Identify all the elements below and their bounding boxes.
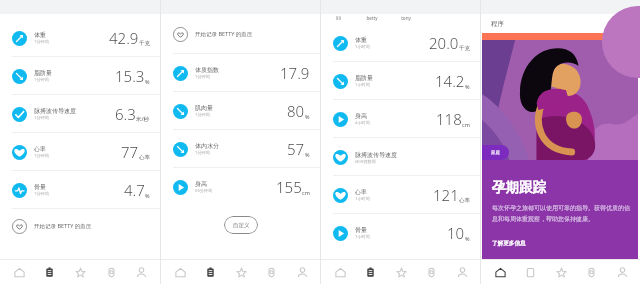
staticText: 心率 <box>34 145 46 153</box>
staticText: 还没有数据 <box>355 159 376 164</box>
staticText: 体内水分 <box>195 142 219 150</box>
button[interactable]: Profile <box>129 260 153 284</box>
staticText: 孕期跟踪 <box>492 179 546 196</box>
button[interactable]: 自定义 <box>224 216 258 234</box>
button[interactable]: Home <box>7 260 31 284</box>
button[interactable]: 骨量 <box>0 171 160 209</box>
staticText: 10 <box>447 223 465 243</box>
button[interactable]: 身高 <box>321 100 480 138</box>
staticText: 57 <box>287 139 305 159</box>
staticText: 脉搏波传导速度 <box>355 151 397 159</box>
button[interactable]: Home <box>168 260 192 284</box>
button[interactable]: betty <box>355 14 389 21</box>
staticText: cm <box>302 189 310 196</box>
staticText: % <box>465 83 470 90</box>
button[interactable]: Favorites <box>549 260 573 284</box>
staticText: 17.9 <box>280 63 310 83</box>
button[interactable]: 心率 <box>0 133 160 171</box>
button[interactable]: Devices <box>259 260 283 284</box>
staticText: 骨量 <box>34 183 46 191</box>
button[interactable]: 体内水分 <box>161 130 320 168</box>
staticText: 体重 <box>34 31 46 39</box>
staticText: 77 <box>121 142 139 162</box>
button[interactable]: Devices <box>579 260 603 284</box>
staticText: 1分钟前 <box>195 150 210 156</box>
staticText: 自定义 <box>233 222 250 229</box>
button[interactable]: 脉搏波传导速度 <box>321 138 480 176</box>
staticText: 1分钟前 <box>34 153 49 159</box>
staticText: 开始记录 BETTY 的血压 <box>34 222 92 230</box>
staticText: % <box>145 78 150 85</box>
staticText: 15.3 <box>115 66 145 86</box>
staticText: 身高 <box>355 112 367 120</box>
staticText: 55分钟前 <box>195 188 213 194</box>
button[interactable]: 体重 <box>321 24 480 62</box>
button[interactable]: 肌肉量 <box>161 92 320 130</box>
button[interactable]: 家庭 <box>482 145 509 160</box>
button[interactable]: Records <box>358 260 382 284</box>
button[interactable]: Favorites <box>229 260 253 284</box>
staticText: 脂肪量 <box>355 74 373 82</box>
staticText: 程序 <box>491 20 504 28</box>
button[interactable]: Records <box>518 260 542 284</box>
staticText: 1小时前 <box>355 234 370 240</box>
staticText: 155 <box>276 177 302 197</box>
button[interactable]: 家庭 <box>482 33 638 259</box>
staticText: 千克 <box>139 40 150 47</box>
button[interactable]: tony <box>389 14 423 21</box>
staticText: 开始记录 BETTY 的血压 <box>195 30 253 38</box>
button[interactable]: 身高 <box>161 168 320 206</box>
staticText: 千克 <box>459 45 470 52</box>
button[interactable]: Favorites <box>389 260 413 284</box>
button[interactable]: 体质指数 <box>161 54 320 92</box>
button[interactable]: 开始记录 BETTY 的血压 <box>161 14 320 54</box>
staticText: 20.0 <box>429 33 459 53</box>
button[interactable]: 了解更多信息 <box>492 240 526 247</box>
staticText: % <box>465 235 470 242</box>
button[interactable]: Home <box>328 260 352 284</box>
staticText: 1分钟前 <box>34 191 49 197</box>
button[interactable]: 开始记录 BETTY 的血压 <box>0 209 160 243</box>
button[interactable]: Records <box>198 260 222 284</box>
staticText: % <box>305 151 310 158</box>
staticText: 米/秒 <box>136 115 150 123</box>
staticText: 42.9 <box>109 28 139 48</box>
button[interactable]: 体重 <box>0 19 160 57</box>
staticText: % <box>305 113 310 120</box>
staticText: 1分钟前 <box>34 39 49 45</box>
button[interactable]: 脉搏波传导速度 <box>0 95 160 133</box>
button[interactable]: 脂肪量 <box>0 57 160 95</box>
staticText: 4小时前 <box>355 120 370 126</box>
staticText: 骨量 <box>355 226 367 234</box>
button[interactable]: Devices <box>419 260 443 284</box>
button[interactable]: Devices <box>99 260 123 284</box>
button[interactable]: Profile <box>290 260 314 284</box>
staticText: 80 <box>287 101 305 121</box>
staticText: 家庭 <box>491 150 500 156</box>
staticText: cm <box>462 121 470 128</box>
button[interactable]: 骨量 <box>321 214 480 252</box>
button[interactable]: Favorites <box>68 260 92 284</box>
staticText: 1小时前 <box>355 196 370 202</box>
staticText: 4.7 <box>124 180 145 200</box>
staticText: 心率 <box>355 188 367 196</box>
staticText: 1分钟前 <box>195 74 210 80</box>
staticText: 肌肉量 <box>195 104 213 112</box>
staticText: 身高 <box>195 180 207 188</box>
staticText: betty <box>366 15 378 21</box>
staticText: lili <box>336 15 341 21</box>
staticText: % <box>145 192 150 199</box>
button[interactable]: 心率 <box>321 176 480 214</box>
button[interactable]: Home <box>488 260 512 284</box>
staticText: 心率 <box>139 154 150 161</box>
staticText: 1小时前 <box>355 44 370 50</box>
button[interactable]: Records <box>37 260 61 284</box>
button[interactable]: lili <box>321 14 355 21</box>
staticText: 1分钟前 <box>34 77 49 83</box>
button[interactable]: Profile <box>450 260 474 284</box>
staticText: 脉搏波传导速度 <box>34 107 76 115</box>
staticText: 心率 <box>459 197 470 204</box>
button[interactable]: Profile <box>610 260 634 284</box>
button[interactable]: 脂肪量 <box>321 62 480 100</box>
